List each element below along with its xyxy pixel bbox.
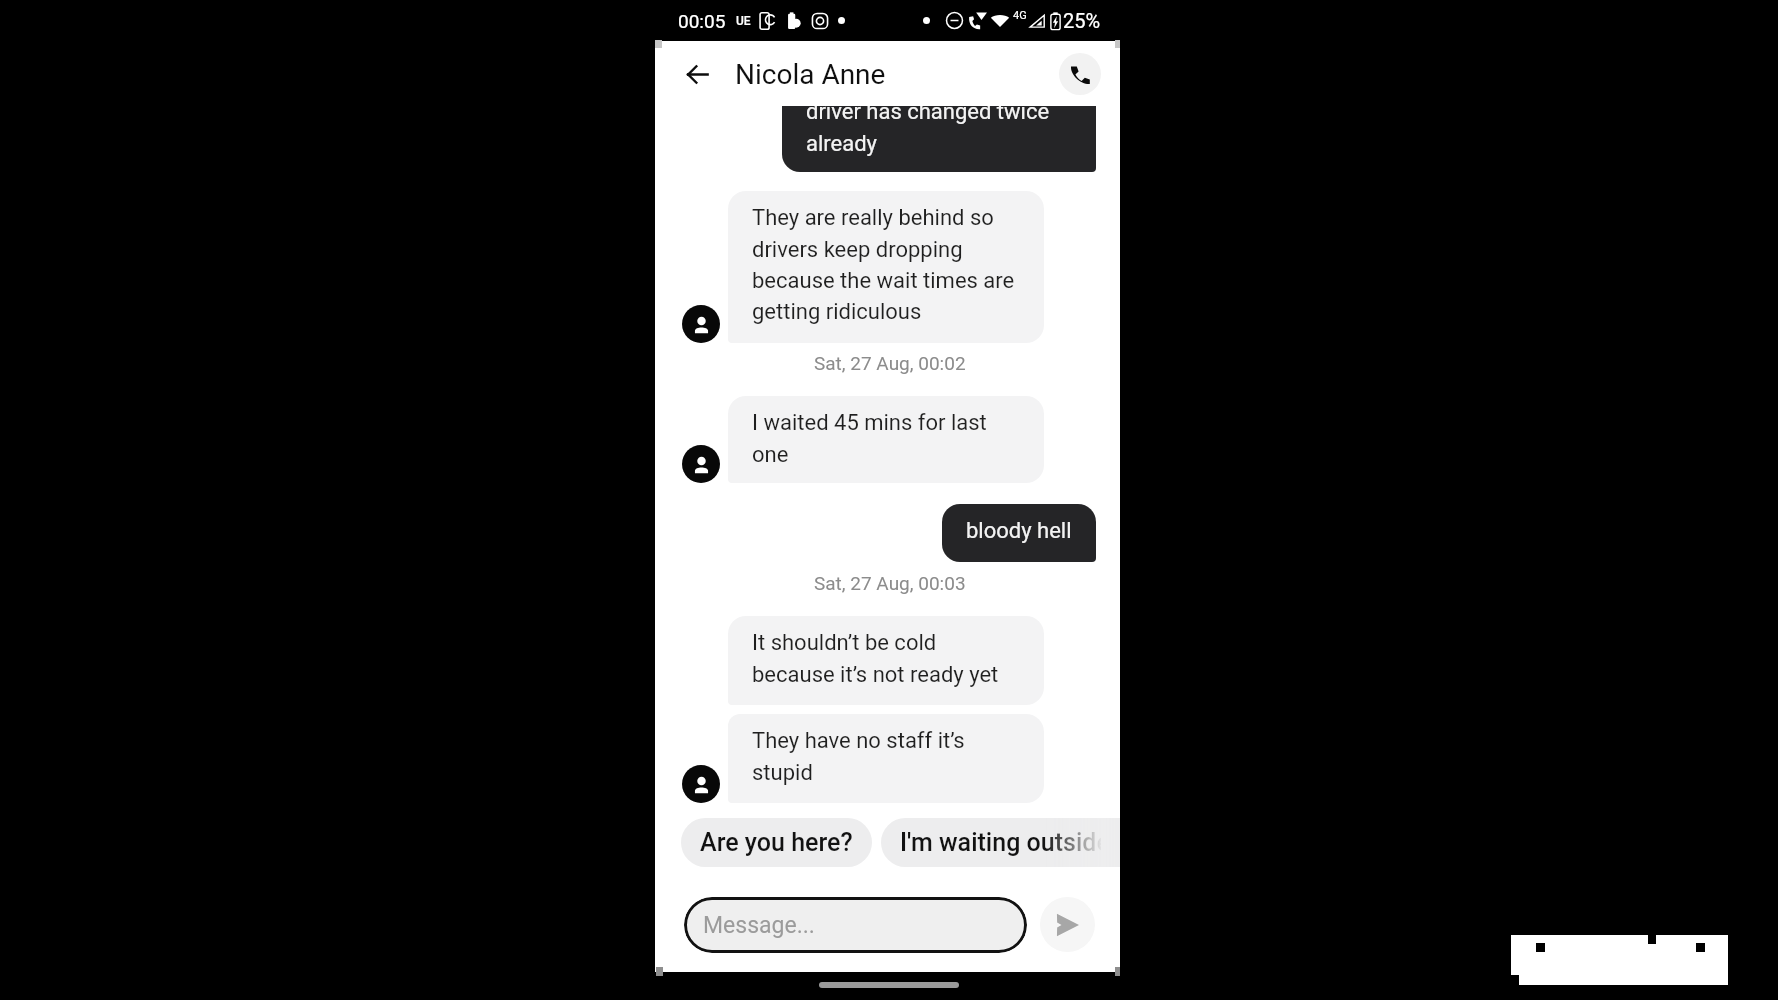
- staticText: Are you here?: [700, 828, 853, 857]
- button[interactable]: Call: [1059, 53, 1101, 95]
- button[interactable]: I'm waiting outside: [881, 818, 1120, 867]
- button[interactable]: Message...: [684, 897, 1027, 953]
- staticText: Sat, 27 Aug, 00:02: [814, 352, 966, 374]
- button[interactable]: Send: [1040, 897, 1095, 952]
- staticText: driver has changed twice already: [806, 106, 1050, 156]
- button[interactable]: bloody hell: [942, 504, 1096, 562]
- button[interactable]: They are really behind so drivers keep d…: [728, 191, 1044, 343]
- staticText: UE: [736, 14, 751, 28]
- button[interactable]: Back: [680, 57, 714, 91]
- button[interactable]: Are you here?: [681, 818, 872, 867]
- staticText: I'm waiting outside: [900, 828, 1101, 857]
- staticText: They are really behind so drivers keep d…: [752, 205, 1020, 324]
- staticText: It shouldn’t be cold because it’s not re…: [752, 630, 1020, 687]
- staticText: bloody hell: [966, 518, 1072, 544]
- button[interactable]: It shouldn’t be cold because it’s not re…: [728, 616, 1044, 705]
- staticText: I waited 45 mins for last one: [752, 410, 1020, 467]
- button[interactable]: They have no staff it’s stupid: [728, 714, 1044, 803]
- staticText: Sat, 27 Aug, 00:03: [814, 572, 966, 594]
- staticText: 00:05: [678, 10, 726, 32]
- staticText: Nicola Anne: [735, 58, 886, 91]
- staticText: 25%: [1063, 9, 1101, 32]
- button[interactable]: I waited 45 mins for last one: [728, 396, 1044, 483]
- staticText: 4G: [1013, 9, 1027, 22]
- button[interactable]: driver has changed twice already: [782, 106, 1096, 172]
- staticText: They have no staff it’s stupid: [752, 728, 1020, 785]
- staticText: Message...: [703, 912, 815, 939]
